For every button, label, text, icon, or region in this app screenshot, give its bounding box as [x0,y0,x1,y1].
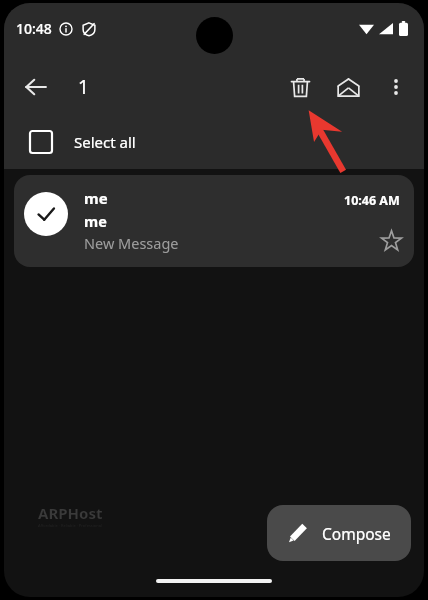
staticText: ARPHost [38,503,103,523]
staticText: Compose [322,523,391,544]
staticText: New Message [84,233,179,253]
staticText: 1 [78,74,89,100]
staticText: me [84,188,108,208]
staticText: 10:46 AM [344,192,400,209]
button[interactable]: me [14,175,414,267]
staticText: 10:48 [16,19,52,38]
button[interactable]: Compose [267,505,411,561]
staticText: Select all [74,132,136,152]
staticText: me [84,211,107,231]
button[interactable]: Select all [4,115,424,169]
button[interactable]: More options [372,63,420,111]
button[interactable]: Star [374,223,408,257]
button[interactable]: Back [12,63,60,111]
button[interactable]: Mark as read [324,63,372,111]
button[interactable]: Delete [276,63,324,111]
